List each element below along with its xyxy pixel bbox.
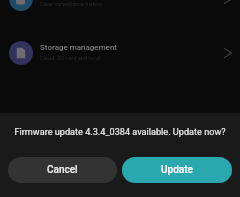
other: Open: [220, 45, 236, 61]
staticText: Cloud, SD card and local: [40, 55, 101, 62]
button[interactable]: Surveillance history: [0, 0, 240, 22]
button[interactable]: Update: [122, 157, 232, 183]
staticText: Storage management: [40, 43, 117, 52]
other: Open: [220, 0, 236, 7]
staticText: Update: [161, 164, 193, 176]
button[interactable]: Cancel: [8, 157, 117, 183]
button[interactable]: Storage management: [0, 30, 240, 76]
staticText: Firmware update 4.3.4_0384 available. Up…: [0, 127, 240, 138]
staticText: Clear surveillance history: [40, 1, 103, 8]
staticText: Cancel: [47, 164, 78, 176]
